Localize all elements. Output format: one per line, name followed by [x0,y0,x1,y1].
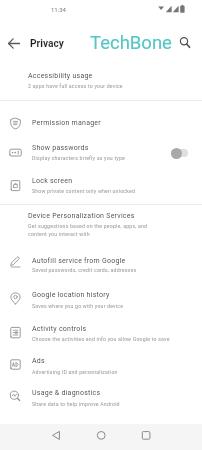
staticText: Privacy [30,38,64,50]
button[interactable]: Show passwords [0,138,202,168]
button[interactable]: Ads [0,349,202,381]
button[interactable] [46,424,66,444]
staticText: Accessibility usage [28,72,93,80]
staticText: TechBone [90,32,172,54]
staticText: Ads [32,357,45,365]
staticText: 2 apps have full access to your device [28,83,123,89]
staticText: 11:34 [51,6,66,13]
button[interactable]: Lock screen [0,168,202,204]
button[interactable] [136,424,156,444]
staticText: Show private content only when unlocked [32,188,136,194]
button[interactable]: Autofill service from Google [0,245,202,281]
button[interactable]: Device Personalization Services [0,205,202,245]
staticText: Share data to help improve Android [32,401,120,407]
staticText: Saves where you go with your device [32,303,124,309]
button[interactable] [2,32,26,54]
staticText: Autofill service from Google [32,257,126,265]
staticText: Usage & diagnostics [32,389,101,397]
staticText: Lock screen [32,177,73,185]
staticText: Saved passwords, credit cards, addresses [32,267,137,273]
staticText: content you interact with [28,231,90,237]
staticText: Activity controls [32,325,87,333]
button[interactable]: Google location history [0,281,202,315]
button[interactable] [175,32,197,54]
staticText: Choose the activities and info you allow… [32,336,170,342]
staticText: Permission manager [32,119,101,127]
staticText: Display characters briefly as you type [32,155,126,161]
staticText: Advertising ID and personalization [32,369,118,375]
button[interactable]: Permission manager [0,107,202,138]
button[interactable]: Usage & diagnostics [0,381,202,415]
staticText: Google location history [32,291,110,299]
button[interactable]: Accessibility usage [0,62,202,101]
staticText: Device Personalization Services [28,212,135,220]
button[interactable] [91,424,111,444]
staticText: Get suggestions based on the people, app… [28,223,148,229]
staticText: Show passwords [32,144,89,152]
button[interactable]: Activity controls [0,315,202,349]
